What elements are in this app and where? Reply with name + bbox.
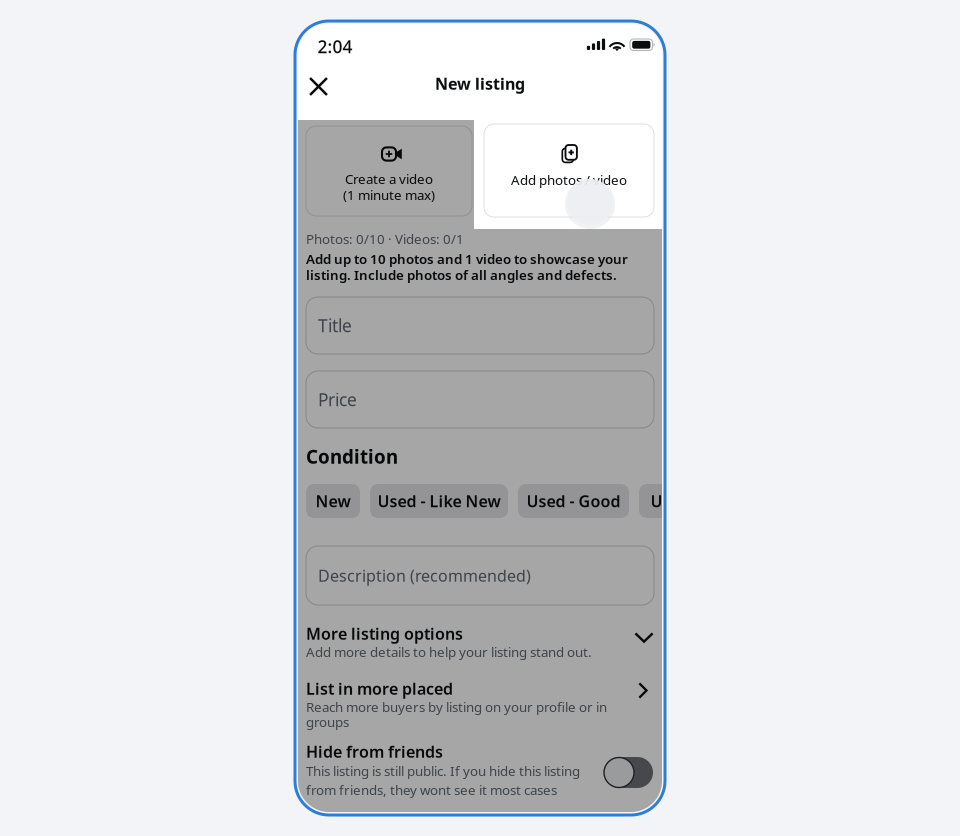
staticText: Used - Good (526, 490, 620, 512)
staticText: Price (318, 388, 357, 411)
button[interactable]: Add photos / video (484, 124, 654, 217)
button[interactable]: Used - Like New (370, 484, 508, 518)
staticText: Add photos / video (511, 171, 627, 189)
button[interactable]: Price (306, 371, 654, 428)
staticText: (1 minute max) (343, 186, 435, 204)
staticText: Photos: 0/10 · Videos: 0/1 (306, 230, 464, 248)
button[interactable]: Description (recommended) (306, 546, 654, 605)
staticText: Used - Fair (650, 490, 732, 512)
staticText: from friends, they wont see it most case… (306, 781, 557, 799)
staticText: Add more details to help your listing st… (306, 643, 592, 661)
staticText: Reach more buyers by listing on your pro… (306, 698, 607, 716)
staticText: Hide from friends (306, 741, 443, 762)
staticText: Used - Like New (377, 490, 500, 512)
staticText: Create a video (345, 170, 433, 188)
button[interactable]: Close (297, 66, 339, 106)
button[interactable]: Used - Good (518, 484, 629, 518)
button[interactable]: List in more placed (306, 678, 654, 732)
staticText: listing. Include photos of all angles an… (306, 266, 617, 284)
button[interactable]: Create a video (306, 126, 472, 216)
button[interactable]: Hide from friends (306, 741, 654, 797)
staticText: Description (recommended) (318, 565, 531, 586)
staticText: More listing options (306, 623, 463, 644)
staticText: New listing (435, 73, 525, 94)
button[interactable]: Used - Fair (639, 484, 744, 518)
button[interactable]: More listing options (306, 623, 654, 661)
staticText: 2:04 (317, 35, 352, 58)
staticText: Add up to 10 photos and 1 video to showc… (306, 250, 628, 268)
staticText: List in more placed (306, 678, 453, 699)
staticText: This listing is still public. If you hid… (306, 762, 580, 780)
staticText: Title (318, 314, 352, 337)
staticText: Condition (306, 444, 398, 469)
button[interactable]: New (306, 484, 360, 518)
button[interactable]: Title (306, 297, 654, 354)
staticText: groups (306, 713, 349, 731)
staticText: New (315, 490, 350, 512)
